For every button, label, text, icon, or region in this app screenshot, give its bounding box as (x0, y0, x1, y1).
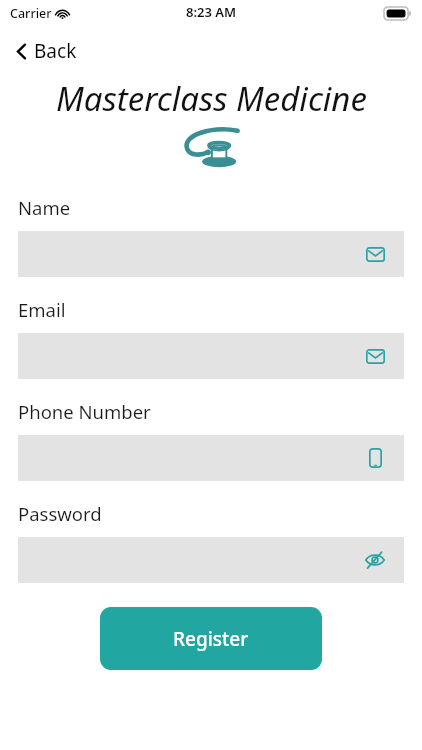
button[interactable]: Email (18, 333, 404, 379)
staticText: Carrier (10, 5, 52, 22)
button[interactable]: Back (10, 34, 83, 68)
button[interactable]: Phone (362, 445, 388, 471)
button[interactable]: Show password (18, 537, 404, 583)
staticText: Name (18, 195, 71, 220)
button[interactable]: Email (362, 241, 388, 267)
staticText: Password (18, 501, 102, 526)
staticText: Register (173, 626, 249, 652)
staticText: Email (18, 297, 66, 322)
staticText: Back (34, 38, 77, 64)
staticText: Masterclass Medicine (56, 76, 367, 121)
staticText: Phone Number (18, 399, 151, 424)
staticText: 8:23 AM (186, 3, 237, 21)
button[interactable]: Register (100, 607, 322, 670)
button[interactable]: Show password (362, 547, 388, 573)
button[interactable]: Email (362, 343, 388, 369)
button[interactable]: Phone (18, 435, 404, 481)
button[interactable]: Email (18, 231, 404, 277)
